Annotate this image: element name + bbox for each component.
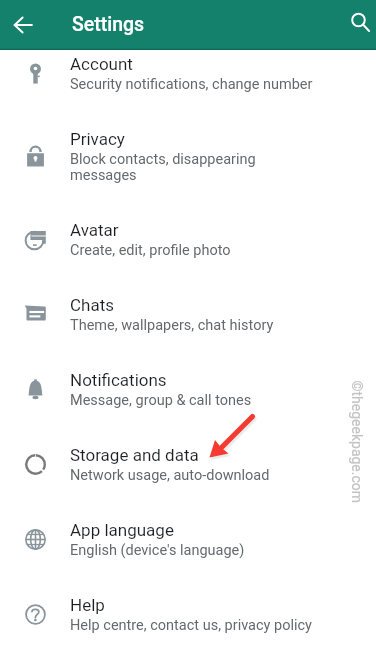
button[interactable]: App language <box>0 502 376 577</box>
staticText: Network usage, auto-download <box>70 467 270 484</box>
staticText: Block contacts, disappearing messages <box>70 151 256 184</box>
button[interactable]: Notifications <box>0 352 376 427</box>
staticText: Create, edit, profile photo <box>70 242 231 259</box>
staticText: App language <box>70 520 174 540</box>
staticText: Help <box>70 595 105 615</box>
button[interactable]: Back <box>8 9 40 41</box>
staticText: Message, group & call tones <box>70 392 252 409</box>
staticText: Notifications <box>70 370 167 390</box>
button[interactable]: Help <box>0 577 376 652</box>
staticText: English (device's language) <box>70 542 245 559</box>
staticText: Security notifications, change number <box>70 76 313 93</box>
button[interactable]: Search <box>339 7 375 43</box>
staticText: Privacy <box>70 129 125 149</box>
button[interactable]: Storage and data <box>0 427 376 502</box>
staticText: Avatar <box>70 220 119 240</box>
staticText: Settings <box>72 13 145 36</box>
button[interactable]: Chats <box>0 277 376 352</box>
button[interactable]: Account <box>0 50 376 111</box>
button[interactable]: Privacy <box>0 111 376 202</box>
button[interactable]: Avatar <box>0 202 376 277</box>
staticText: Help centre, contact us, privacy policy <box>70 617 312 634</box>
staticText: ©thegeekpage.com <box>348 380 364 503</box>
staticText: Chats <box>70 295 115 315</box>
staticText: Theme, wallpapers, chat history <box>70 317 274 334</box>
staticText: Storage and data <box>70 445 199 465</box>
staticText: Account <box>70 54 133 74</box>
